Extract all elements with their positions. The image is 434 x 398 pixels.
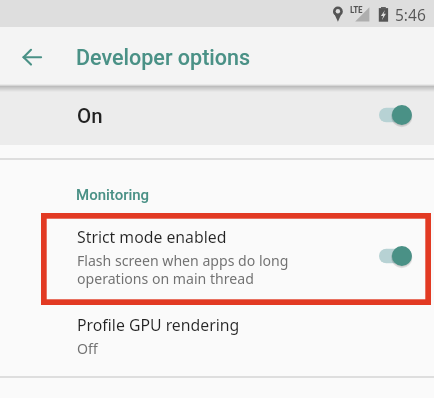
staticText: Developer options <box>76 45 251 70</box>
staticText: Off <box>77 339 98 358</box>
button[interactable]: Profile GPU rendering <box>0 308 434 376</box>
staticText: Strict mode enabled <box>77 226 227 248</box>
staticText: On <box>77 104 103 128</box>
button[interactable]: Strict mode enabled <box>0 213 434 305</box>
staticText: Monitoring <box>76 186 150 204</box>
staticText: LTE <box>350 4 363 15</box>
button[interactable]: On <box>0 86 434 145</box>
staticText: 5:46 <box>395 4 426 25</box>
staticText: Flash screen when apps do long operation… <box>77 251 289 288</box>
staticText: Profile GPU rendering <box>77 314 240 336</box>
button[interactable]: Back <box>8 33 56 81</box>
